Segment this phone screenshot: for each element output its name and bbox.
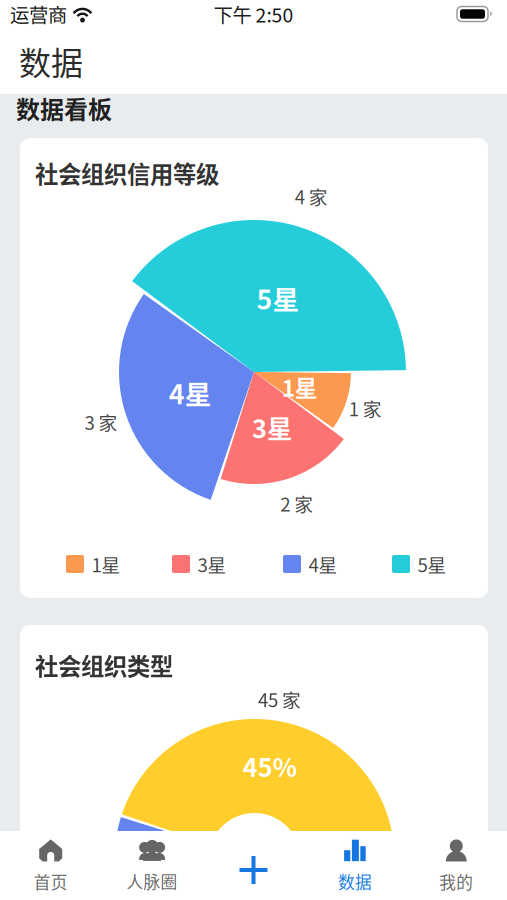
staticText: 首页 xyxy=(34,869,68,893)
staticText: 社会组织信用等级 xyxy=(35,156,219,190)
staticText: 数据 xyxy=(338,869,372,893)
button[interactable]: 数据 xyxy=(304,831,406,900)
staticText: 3 家 xyxy=(84,408,117,435)
staticText: 4 家 xyxy=(295,182,328,209)
staticText: 运营商 xyxy=(10,0,67,28)
staticText: 1 家 xyxy=(349,395,382,422)
staticText: 数据看板 xyxy=(16,91,112,125)
staticText: 45% xyxy=(242,748,296,784)
staticText: 3星 xyxy=(197,550,226,577)
staticText: 社会组织类型 xyxy=(35,648,173,682)
staticText: 数据 xyxy=(19,38,83,84)
staticText: 下午 2:50 xyxy=(213,0,293,28)
staticText: 3星 xyxy=(252,409,292,445)
button[interactable]: 首页 xyxy=(0,831,101,900)
staticText: 1星 xyxy=(91,550,120,577)
staticText: 人脉圈 xyxy=(127,869,178,893)
staticText: 5星 xyxy=(417,550,446,577)
staticText: 5星 xyxy=(257,278,300,317)
staticText: 我的 xyxy=(439,869,473,893)
button[interactable]: 人脉圈 xyxy=(101,831,203,900)
staticText: 2 家 xyxy=(280,490,313,517)
staticText: 1星 xyxy=(282,370,318,403)
staticText: 45 家 xyxy=(258,685,301,712)
button[interactable]: 我的 xyxy=(406,831,507,900)
staticText: 4星 xyxy=(169,373,212,412)
staticText: 4星 xyxy=(308,550,337,577)
button[interactable]: 新建 xyxy=(203,831,304,900)
